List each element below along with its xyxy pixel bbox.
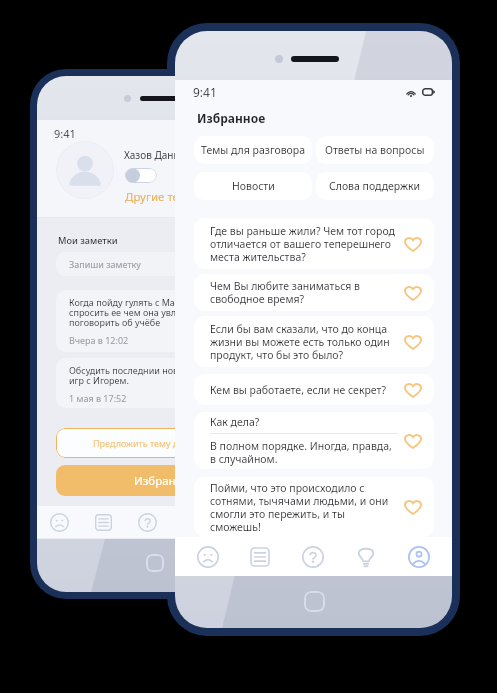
button[interactable] [125,168,157,183]
staticText: Предложить тему для разговора [93,437,237,449]
other: Notes [94,513,113,532]
button[interactable]: Кем вы работаете, если не секрет? [194,374,434,405]
button[interactable]: Profile [213,506,257,538]
staticText: Слова поддержки [329,179,421,193]
staticText: 9:41 [193,84,217,100]
staticText: Хазов Данил [124,148,186,162]
other: Mood [197,546,219,568]
staticText: Новости [232,179,275,193]
button[interactable]: Новости [194,172,312,200]
other: Favorite [404,382,422,398]
other: Mood [50,513,69,532]
staticText: Обсудить последнии новости игр с Игорем. [69,364,198,387]
staticText: Кем вы работаете, если не секрет? [210,383,398,397]
button[interactable]: Когда пойду гулять с Машей спросить ее ч… [56,290,274,352]
staticText: 9:41 [54,126,76,141]
staticText: Запиши заметку [69,258,141,270]
button[interactable]: Mood [37,506,81,538]
staticText: Если бы вам сказали, что до конца жизни … [210,322,398,362]
button[interactable]: Как дела? [194,412,434,469]
other: Notes [249,546,271,568]
staticText: Ответы на вопросы [325,143,425,157]
staticText: Темы для разговора [201,143,306,157]
button[interactable]: Обсудить последнии новости игр с Игорем. [56,358,274,408]
staticText: Вчера в 12:02 [69,334,129,346]
button[interactable]: Запиши заметку [56,252,274,276]
button[interactable]: Если бы вам сказали, что до конца жизни … [194,316,434,367]
other: Ideas [355,546,377,568]
button[interactable]: Ideas [169,506,213,538]
button[interactable]: Ideas [339,537,392,576]
other: Favorite [404,433,422,449]
button[interactable]: Пойми, что это происходило с сотнями, ты… [194,477,434,537]
other: Profile [226,513,245,532]
staticText: Где вы раньше жили? Чем тот город отлича… [210,224,398,264]
staticText: 1 мая в 17:52 [69,392,127,403]
button[interactable]: Questions [125,506,169,538]
button[interactable]: Темы для разговора [194,136,312,164]
button[interactable]: Notes [81,506,125,538]
other: Questions [302,546,324,568]
staticText: Чем Вы любите заниматься в свободное вре… [210,279,398,306]
button[interactable]: Notes [234,537,286,576]
staticText: Избранное [134,473,196,489]
other: Favorite [404,285,422,301]
button[interactable]: Profile [392,537,445,576]
button[interactable]: Предложить тему для разговора [56,428,274,458]
other: Ideas [182,513,201,532]
button[interactable]: Где вы раньше жили? Чем тот город отлича… [194,218,434,269]
button[interactable]: Mood [182,537,234,576]
button[interactable]: Слова поддержки [316,172,434,200]
other: Favorite [404,236,422,252]
staticText: Другие темы [125,189,197,205]
other: Profile [408,546,430,568]
other: Favorite [404,334,422,350]
other: Questions [138,513,157,532]
button[interactable]: Избранное [56,465,274,496]
button[interactable]: Ответы на вопросы [316,136,434,164]
staticText: Когда пойду гулять с Машей спросить ее ч… [69,296,210,329]
staticText: Как дела? [210,415,260,429]
button[interactable]: Questions [286,537,339,576]
staticText: В полном порядке. Иногда, правда, в случ… [210,439,392,466]
staticText: Избранное [197,110,266,126]
other: Favorite [404,499,422,515]
staticText: Мои заметки [58,234,118,247]
staticText: Пойми, что это происходило с сотнями, ты… [210,481,398,534]
button[interactable]: Чем Вы любите заниматься в свободное вре… [194,274,434,311]
